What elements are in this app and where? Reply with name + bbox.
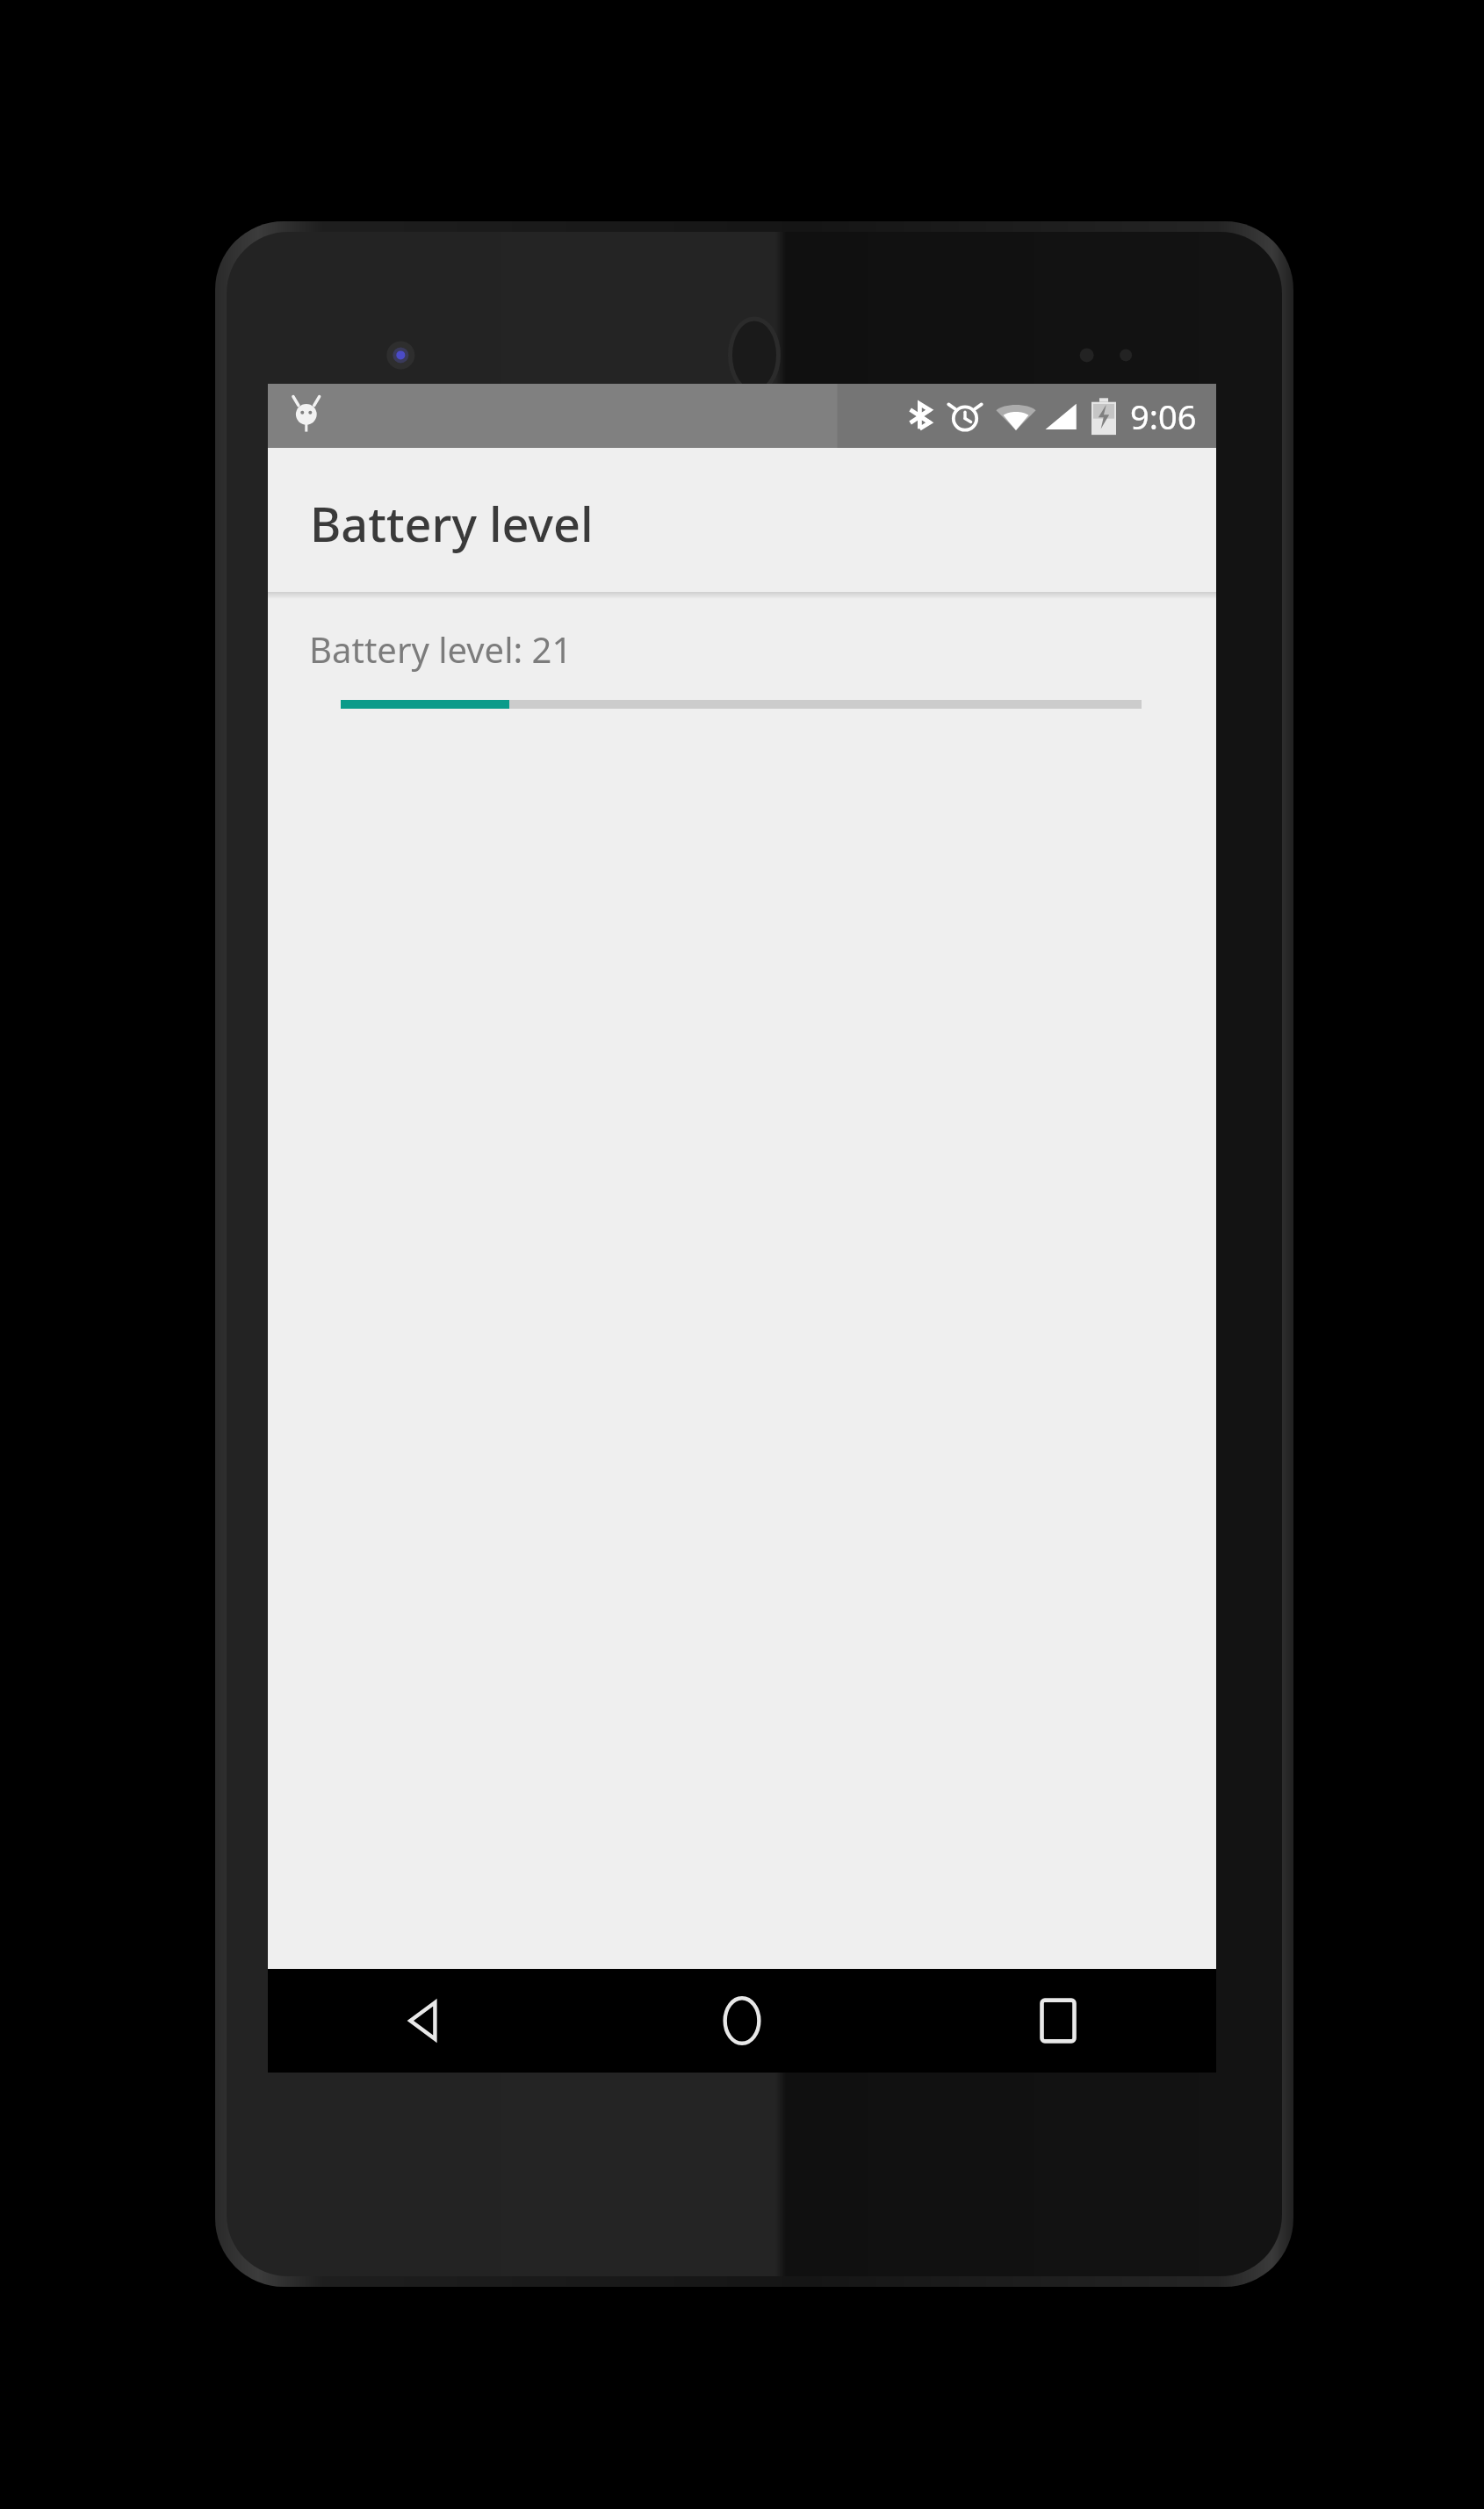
staticText: 9:06 xyxy=(1130,393,1197,439)
button[interactable]: Back xyxy=(268,1969,584,2073)
button[interactable]: Recent apps xyxy=(900,1969,1216,2073)
staticText: Battery level: 21 xyxy=(309,625,573,673)
button[interactable]: Home xyxy=(584,1969,900,2073)
staticText: Battery level xyxy=(310,491,594,556)
